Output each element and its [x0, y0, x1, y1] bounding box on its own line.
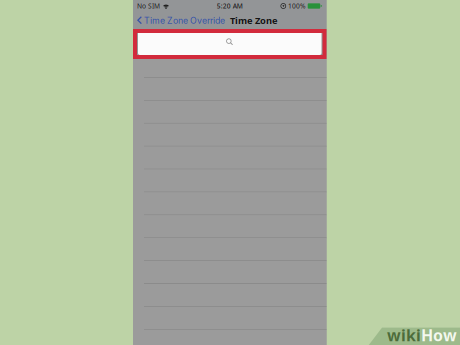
staticText: wiki	[387, 324, 421, 345]
staticText: Time Zone Override	[144, 15, 225, 26]
button[interactable]	[138, 29, 321, 55]
button[interactable]	[133, 261, 326, 284]
staticText: How	[421, 324, 457, 345]
button[interactable]	[133, 55, 326, 78]
staticText: Time Zone	[230, 14, 278, 27]
staticText: No SIM	[137, 2, 160, 10]
button[interactable]: Time Zone Override	[137, 12, 225, 29]
staticText: 100%	[288, 2, 306, 10]
staticText: 5:20 AM	[217, 2, 243, 10]
